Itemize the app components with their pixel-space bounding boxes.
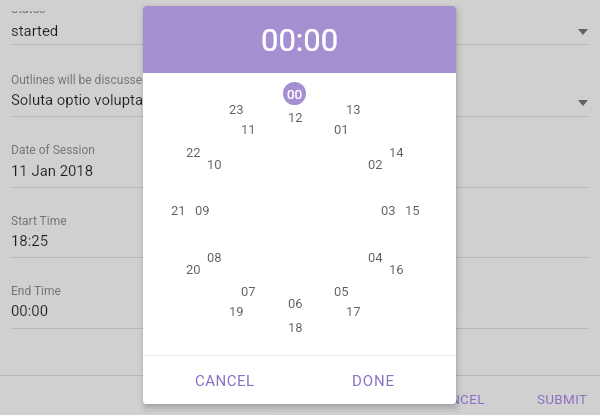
staticText: started [11, 22, 59, 40]
button[interactable]: 16 [385, 258, 407, 280]
staticText: 07 [241, 284, 256, 299]
button[interactable]: 04 [364, 246, 386, 268]
staticText: Date of Session [11, 143, 95, 157]
staticText: Status [11, 2, 46, 16]
button[interactable]: 00 [283, 82, 306, 105]
button[interactable]: DONE [344, 367, 403, 395]
staticText: 20 [186, 262, 201, 277]
staticText: 11 [241, 122, 256, 137]
button[interactable]: 06 [284, 292, 306, 314]
staticText: 12 [288, 110, 303, 125]
button[interactable]: 03 [377, 199, 399, 221]
button[interactable]: SUBMIT [529, 385, 596, 413]
button[interactable]: 21 [167, 199, 189, 221]
staticText: 21 [171, 203, 186, 218]
button[interactable]: 14 [385, 141, 407, 163]
button[interactable]: 23 [225, 98, 247, 120]
button[interactable]: CANCEL [424, 385, 493, 413]
staticText: 10 [207, 157, 222, 172]
button[interactable]: 18 [284, 316, 306, 338]
button[interactable]: 20 [182, 258, 204, 280]
staticText: 00 [287, 86, 303, 102]
staticText: CANCEL [432, 391, 485, 407]
staticText: 04 [368, 250, 383, 265]
button[interactable]: 01 [330, 118, 352, 140]
button[interactable]: 22 [182, 141, 204, 163]
staticText: 00:00 [261, 22, 339, 58]
staticText: 23 [229, 102, 244, 117]
staticText: End Time [11, 284, 61, 298]
button[interactable]: 07 [237, 280, 259, 302]
staticText: 08 [207, 250, 222, 265]
button[interactable]: 10 [203, 153, 225, 175]
staticText: 09 [195, 203, 210, 218]
staticText: 17 [346, 304, 361, 319]
staticText: 01 [334, 122, 349, 137]
staticText: 00:00 [11, 302, 48, 320]
staticText: 02 [368, 157, 383, 172]
staticText: 11 Jan 2018 [11, 162, 94, 180]
button[interactable]: 05 [330, 280, 352, 302]
button[interactable]: 12 [284, 106, 306, 128]
button[interactable]: 17 [342, 300, 364, 322]
button[interactable]: 15 [401, 199, 423, 221]
staticText: DONE [352, 372, 395, 390]
staticText: Start Time [11, 214, 67, 228]
staticText: 05 [334, 284, 349, 299]
staticText: 16 [389, 262, 404, 277]
staticText: 19 [229, 304, 244, 319]
button[interactable]: 02 [364, 153, 386, 175]
staticText: 22 [186, 145, 201, 160]
other: Expand [578, 100, 588, 106]
staticText: Outlines will be discussed [11, 73, 149, 87]
other: Expand [578, 29, 588, 35]
staticText: 18 [288, 320, 303, 335]
button[interactable]: 13 [342, 98, 364, 120]
staticText: SUBMIT [537, 391, 588, 407]
button[interactable]: 19 [225, 300, 247, 322]
staticText: 15 [405, 203, 420, 218]
staticText: 18:25 [11, 232, 48, 250]
staticText: 14 [389, 145, 404, 160]
button[interactable]: 09 [191, 199, 213, 221]
staticText: 03 [381, 203, 396, 218]
staticText: Soluta optio voluptatem [11, 91, 169, 109]
button[interactable]: CANCEL [187, 367, 263, 395]
button[interactable]: 11 [237, 118, 259, 140]
staticText: 13 [346, 102, 361, 117]
button[interactable]: 08 [203, 246, 225, 268]
staticText: 06 [288, 296, 303, 311]
staticText: CANCEL [195, 372, 255, 390]
